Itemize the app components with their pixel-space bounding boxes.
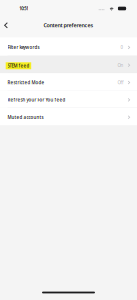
button[interactable]: Filter keywords: [0, 37, 137, 56]
staticText: On: [117, 62, 123, 68]
staticText: STEM feed: [8, 63, 30, 69]
button[interactable]: Muted accounts: [0, 108, 137, 125]
button[interactable]: STEM feed: [0, 56, 137, 73]
staticText: Refresh your For You feed: [8, 97, 66, 103]
staticText: 0: [120, 44, 123, 50]
staticText: Filter keywords: [8, 44, 40, 50]
staticText: Content preferences: [43, 22, 93, 29]
staticText: Muted accounts: [8, 114, 44, 120]
button[interactable]: Refresh your For You feed: [0, 90, 137, 108]
staticText: Off: [117, 79, 123, 85]
button[interactable]: Restricted Mode: [0, 73, 137, 91]
staticText: Restricted Mode: [8, 79, 45, 85]
staticText: 10:51: [19, 5, 28, 11]
button[interactable]: Back: [0, 18, 12, 33]
